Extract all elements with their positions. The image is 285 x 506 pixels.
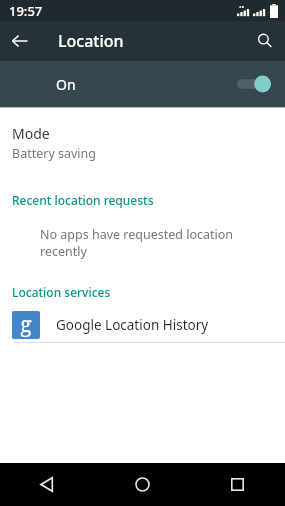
- staticText: Google Location History: [56, 316, 209, 334]
- button[interactable]: g: [0, 308, 285, 342]
- staticText: On: [56, 75, 76, 94]
- button[interactable]: On: [0, 61, 285, 107]
- button[interactable]: Back: [0, 463, 95, 506]
- button[interactable]: Recent apps: [190, 463, 285, 506]
- staticText: Recent location requests: [12, 192, 154, 208]
- staticText: Location: [58, 30, 124, 52]
- staticText: Location services: [12, 284, 111, 300]
- staticText: g: [20, 311, 32, 338]
- button[interactable]: Search: [245, 21, 285, 61]
- staticText: 19:57: [9, 2, 43, 20]
- button[interactable]: Back: [0, 21, 40, 61]
- staticText: Battery saving: [12, 145, 96, 162]
- button[interactable]: Home: [95, 463, 190, 506]
- button[interactable]: Mode: [0, 122, 285, 170]
- staticText: Mode: [12, 124, 50, 143]
- staticText: No apps have requested location recently: [40, 226, 273, 260]
